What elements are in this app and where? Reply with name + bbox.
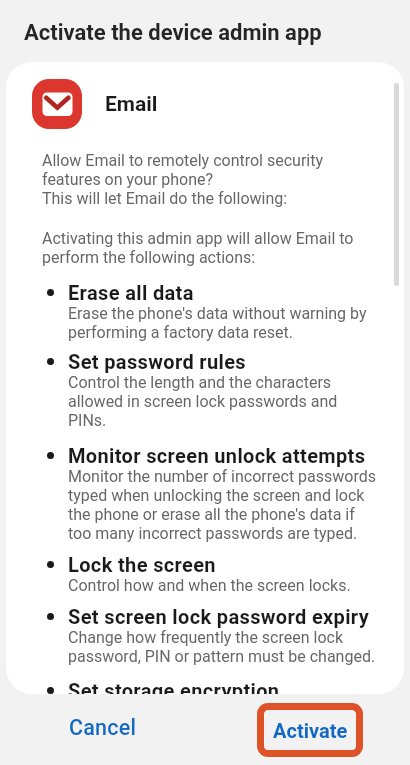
- staticText: Set screen lock password expiry: [68, 605, 370, 628]
- staticText: Monitor the number of incorrect password…: [68, 467, 377, 543]
- button[interactable]: Activate: [257, 703, 363, 757]
- staticText: Erase all data: [68, 281, 194, 304]
- staticText: Change how frequently the screen lock pa…: [68, 628, 376, 666]
- staticText: Cancel: [69, 715, 137, 740]
- staticText: Lock the screen: [68, 553, 216, 576]
- staticText: Erase the phone's data without warning b…: [68, 304, 367, 342]
- staticText: Control how and when the screen locks.: [68, 576, 351, 595]
- staticText: Set storage encryption: [68, 679, 280, 694]
- staticText: Email: [105, 92, 158, 117]
- staticText: Activating this admin app will allow Ema…: [42, 229, 354, 267]
- staticText: Set password rules: [68, 350, 247, 373]
- staticText: Activate: [273, 719, 348, 742]
- staticText: Control the length and the characters al…: [68, 373, 338, 430]
- staticText: Activate the device admin app: [24, 20, 322, 46]
- staticText: Monitor screen unlock attempts: [68, 444, 366, 467]
- button[interactable]: Cancel: [0, 694, 205, 765]
- staticText: Allow Email to remotely control security…: [42, 151, 324, 208]
